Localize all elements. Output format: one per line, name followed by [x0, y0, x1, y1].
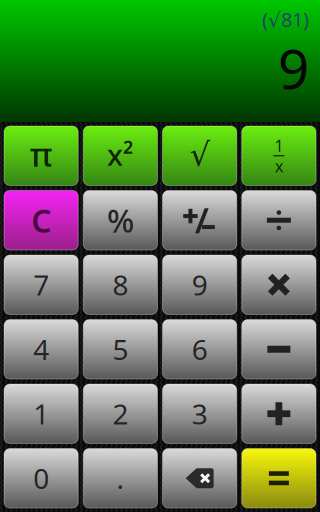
staticText: %: [107, 199, 134, 241]
staticText: (√81): [262, 6, 309, 33]
button[interactable]: .: [83, 448, 157, 508]
button[interactable]: √: [162, 126, 237, 185]
staticText: 6: [192, 331, 208, 368]
button[interactable]: 9: [162, 255, 237, 314]
staticText: 9: [278, 32, 309, 104]
staticText: 8: [112, 266, 128, 303]
staticText: √: [190, 137, 210, 173]
button[interactable]: %: [83, 190, 157, 250]
button[interactable]: 0: [4, 448, 78, 508]
button[interactable]: x²: [83, 126, 157, 185]
staticText: x²: [107, 135, 134, 174]
button[interactable]: Backspace: [162, 448, 237, 508]
button[interactable]: 6: [162, 319, 237, 379]
staticText: .: [116, 460, 124, 497]
staticText: 9: [192, 266, 208, 303]
button[interactable]: π: [4, 126, 78, 185]
staticText: 2: [112, 395, 128, 432]
staticText: 5: [112, 331, 128, 368]
staticText: x: [275, 155, 283, 176]
button[interactable]: Plus minus: [162, 190, 237, 250]
staticText: π: [30, 132, 53, 176]
button[interactable]: Equals: [242, 448, 316, 508]
staticText: 7: [33, 266, 49, 303]
staticText: 3: [192, 395, 208, 432]
staticText: C: [31, 199, 51, 241]
staticText: 1: [274, 135, 283, 156]
staticText: 0: [33, 460, 49, 497]
button[interactable]: Plus: [242, 384, 316, 443]
button[interactable]: Divide: [242, 190, 316, 250]
button[interactable]: 8: [83, 255, 157, 314]
button[interactable]: 5: [83, 319, 157, 379]
button[interactable]: Multiply: [242, 255, 316, 314]
button[interactable]: Minus: [242, 319, 316, 379]
button[interactable]: 7: [4, 255, 78, 314]
button[interactable]: C: [4, 190, 78, 250]
staticText: 4: [33, 331, 49, 368]
button[interactable]: 4: [4, 319, 78, 379]
button[interactable]: 1: [4, 384, 78, 443]
button[interactable]: 3: [162, 384, 237, 443]
button[interactable]: 2: [83, 384, 157, 443]
button[interactable]: Reciprocal: [242, 126, 316, 185]
staticText: 1: [33, 395, 49, 432]
